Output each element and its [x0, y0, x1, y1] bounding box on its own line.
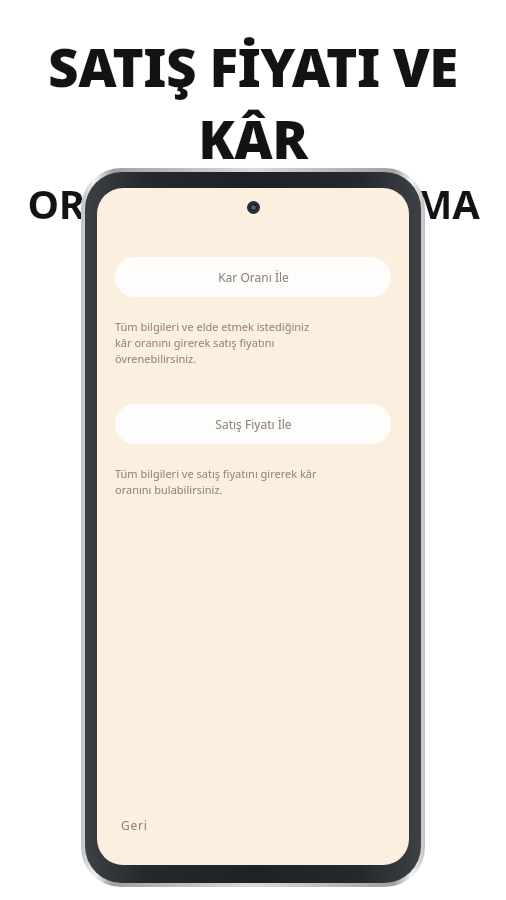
staticText: Kar Oranı İle	[218, 269, 289, 285]
staticText: Geri	[121, 817, 148, 833]
staticText: ORANI İLE HESAPLAMA	[27, 176, 480, 230]
staticText: Satış Fiyatı İle	[215, 416, 292, 432]
staticText: Tüm bilgileri ve elde etmek istediğiniz …	[115, 319, 310, 366]
staticText: Tüm bilgileri ve satış fiyatını girerek …	[115, 466, 317, 497]
button[interactable]: Satış Fiyatı İle	[115, 404, 391, 444]
staticText: SATIŞ FİYATI VE KÂR	[0, 30, 506, 174]
button[interactable]: Geri	[113, 811, 156, 839]
button[interactable]: Kar Oranı İle	[115, 257, 391, 297]
